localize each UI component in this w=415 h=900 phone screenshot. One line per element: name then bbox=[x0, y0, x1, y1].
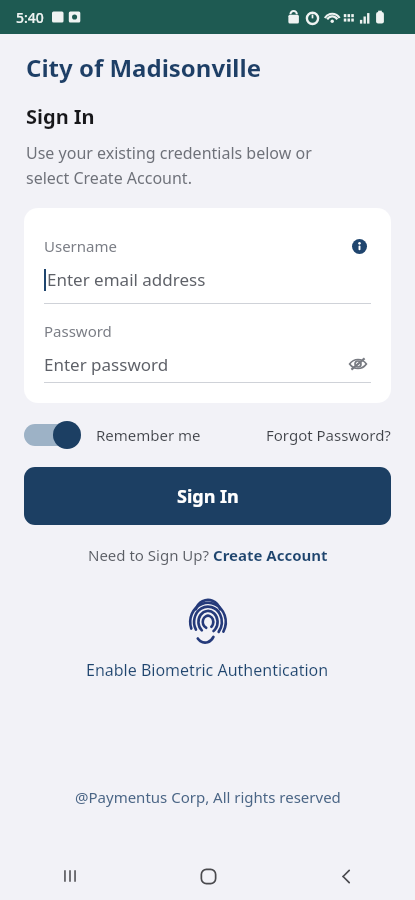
button[interactable]: Remember me bbox=[96, 425, 201, 445]
staticText: @Paymentus Corp, All rights reserved bbox=[75, 787, 341, 807]
staticText: Sign In bbox=[26, 103, 95, 130]
staticText: Password bbox=[44, 321, 112, 341]
button[interactable]: Remember me toggle bbox=[24, 420, 86, 450]
button[interactable]: Enable Biometric Authentication bbox=[0, 597, 415, 681]
staticText: City of Madisonville bbox=[26, 51, 261, 84]
staticText: Use your existing credentials below or bbox=[26, 142, 312, 164]
button[interactable]: Home bbox=[139, 852, 277, 900]
staticText: Enter email address bbox=[47, 268, 206, 291]
button[interactable]: Enter email address bbox=[44, 268, 371, 298]
button[interactable]: Recent apps bbox=[0, 852, 139, 900]
button[interactable]: Create Account bbox=[213, 545, 328, 565]
button[interactable]: Show password bbox=[345, 351, 371, 377]
staticText: Sign In bbox=[177, 484, 239, 509]
staticText: select Create Account. bbox=[26, 167, 192, 189]
button[interactable]: Enter password bbox=[44, 353, 169, 376]
button[interactable]: Forgot Password? bbox=[266, 425, 391, 445]
staticText: Enable Biometric Authentication bbox=[86, 659, 329, 681]
staticText: Need to Sign Up? bbox=[88, 545, 213, 565]
staticText: Username bbox=[44, 236, 117, 256]
button[interactable]: Username info bbox=[347, 234, 371, 258]
button[interactable]: Sign In bbox=[24, 467, 391, 525]
staticText: 5:40 bbox=[16, 8, 44, 27]
button[interactable]: Back bbox=[277, 852, 415, 900]
